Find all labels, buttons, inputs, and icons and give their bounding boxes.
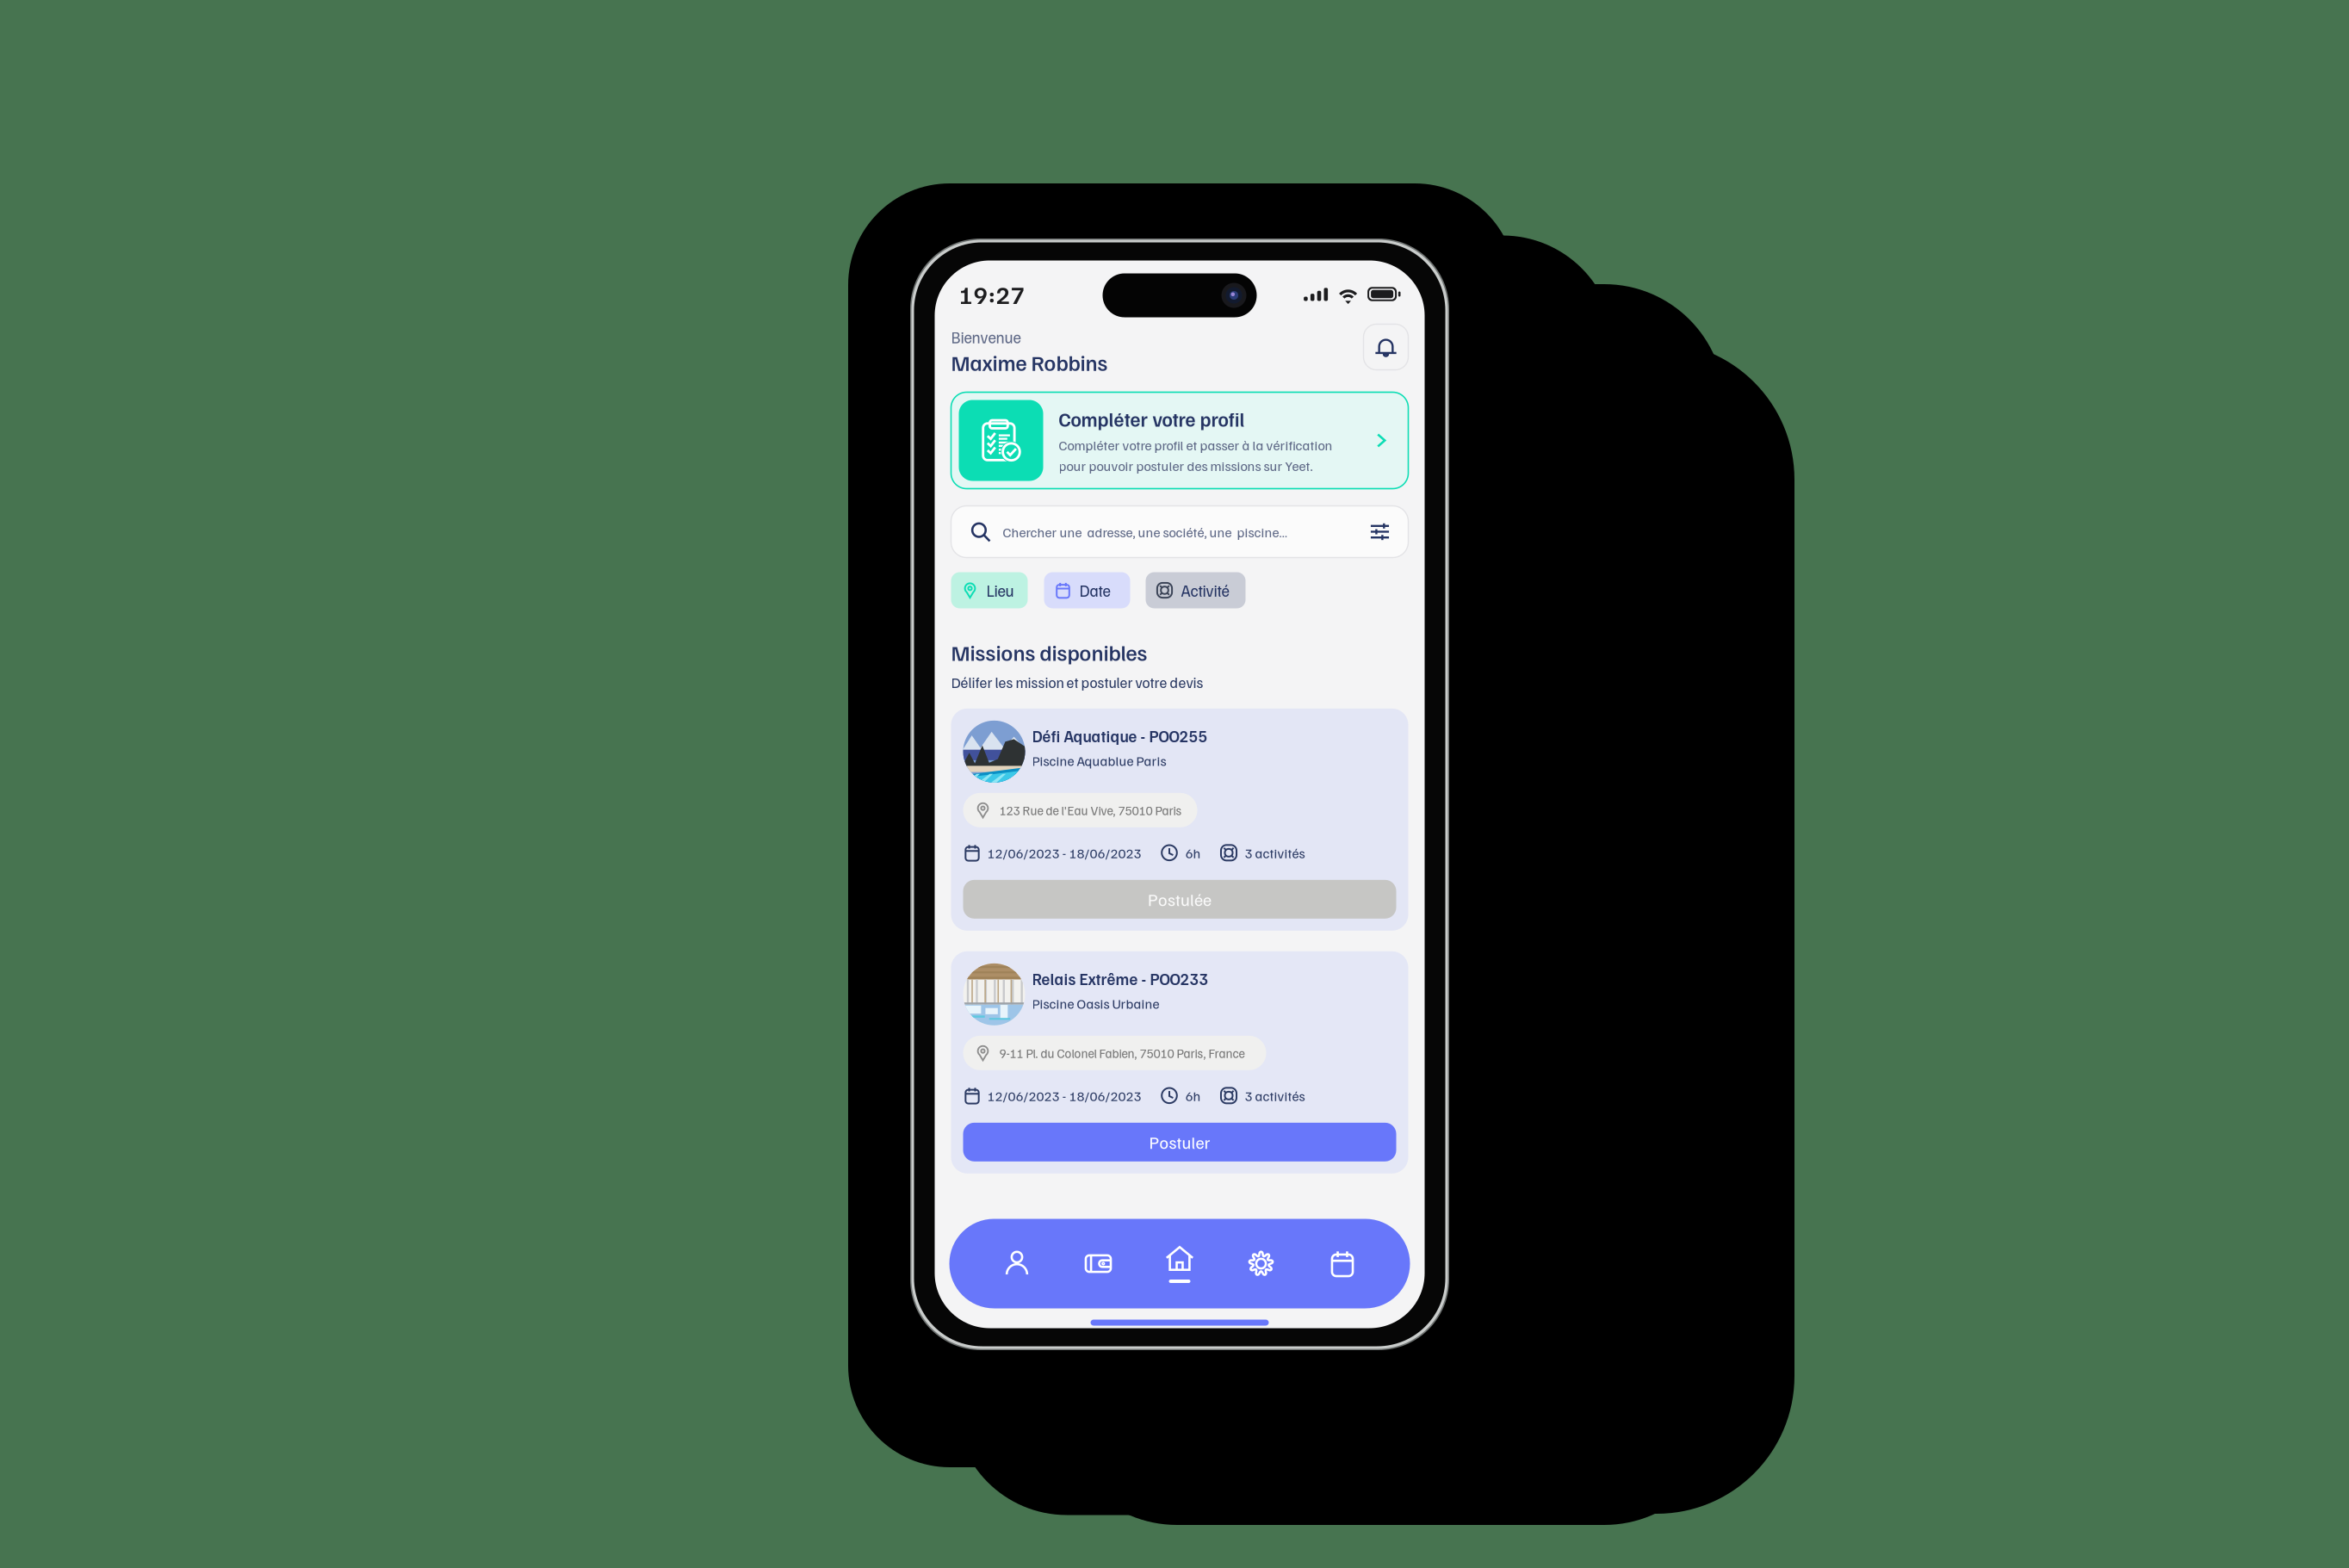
button[interactable]: Calendrier: [1315, 1219, 1370, 1308]
staticText: 9-11 Pl. du Colonel Fabien, 75010 Paris,…: [999, 1045, 1245, 1061]
staticText: Défi Aquatique - POO255: [1032, 726, 1208, 746]
staticText: 123 Rue de l'Eau Vive, 75010 Paris: [999, 802, 1182, 818]
staticText: Bienvenue: [951, 327, 1021, 347]
staticText: Compléter votre profil: [1059, 407, 1245, 431]
button[interactable]: Réglages: [1234, 1219, 1288, 1308]
staticText: Maxime Robbins: [951, 349, 1108, 376]
button[interactable]: Postulée: [963, 880, 1396, 919]
button[interactable]: Accueil: [1153, 1219, 1207, 1308]
staticText: Missions disponibles: [951, 638, 1147, 666]
staticText: Chercher une adresse, une société, une p…: [1003, 523, 1288, 540]
staticText: Activité: [1181, 580, 1229, 600]
button[interactable]: Profil: [990, 1219, 1044, 1308]
staticText: Date: [1079, 580, 1110, 600]
staticText: 12/06/2023 - 18/06/2023: [987, 844, 1141, 861]
staticText: Piscine Aquablue Paris: [1032, 752, 1166, 769]
staticText: 19:27: [959, 278, 1025, 310]
button[interactable]: Portefeuille: [1071, 1219, 1125, 1308]
button[interactable]: Compléter votre profil: [951, 392, 1408, 489]
staticText: Relais Extrême - POO233: [1032, 969, 1209, 989]
staticText: pour pouvoir postuler des missions sur Y…: [1059, 457, 1313, 474]
staticText: Délifer les mission et postuler votre de…: [951, 673, 1203, 691]
staticText: 6h: [1185, 1087, 1201, 1104]
staticText: Lieu: [986, 580, 1014, 600]
button[interactable]: Postuler: [963, 1123, 1396, 1161]
staticText: Compléter votre profil et passer à la vé…: [1059, 436, 1333, 454]
staticText: Postulée: [1148, 888, 1212, 910]
staticText: 6h: [1185, 844, 1201, 861]
button[interactable]: Notifications: [1364, 324, 1408, 370]
button[interactable]: Lieu: [951, 572, 1028, 608]
staticText: 3 activités: [1245, 1087, 1305, 1104]
button[interactable]: Date: [1044, 572, 1130, 608]
staticText: Piscine Oasis Urbaine: [1032, 995, 1159, 1012]
button[interactable]: Chercher une adresse, une société, une p…: [951, 506, 1408, 558]
staticText: 12/06/2023 - 18/06/2023: [987, 1087, 1141, 1104]
button[interactable]: Activité: [1146, 572, 1246, 608]
staticText: Postuler: [1149, 1131, 1210, 1153]
staticText: 3 activités: [1245, 844, 1305, 861]
